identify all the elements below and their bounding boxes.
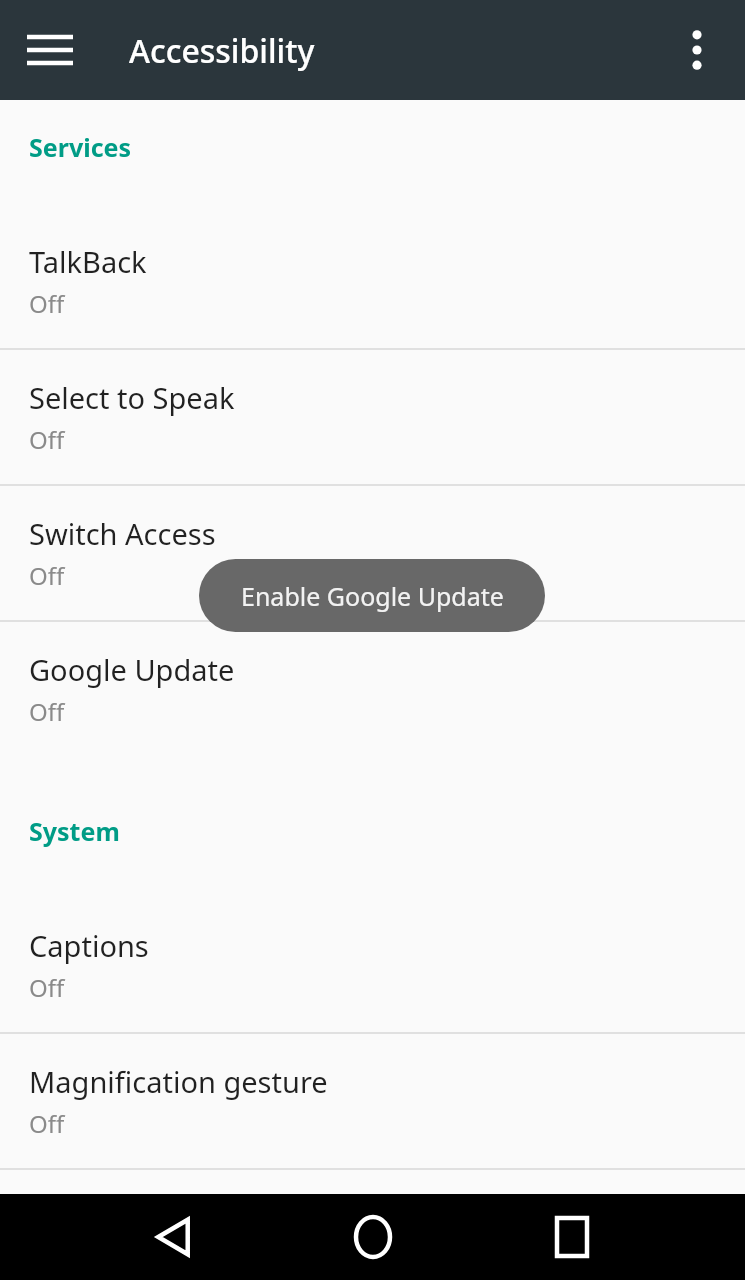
- staticText: Captions: [29, 926, 149, 965]
- staticText: Font size: [29, 1186, 149, 1225]
- button[interactable]: Font size: [0, 1170, 745, 1280]
- staticText: System: [29, 814, 120, 848]
- button[interactable]: Select to Speak: [0, 350, 745, 484]
- button[interactable]: More options: [661, 14, 733, 86]
- staticText: Off: [29, 559, 65, 592]
- button[interactable]: Captions: [0, 898, 745, 1032]
- button[interactable]: Recent apps: [529, 1194, 615, 1280]
- button[interactable]: Google Update: [0, 622, 745, 756]
- staticText: Off: [29, 287, 65, 320]
- staticText: TalkBack: [29, 242, 147, 281]
- staticText: Off: [29, 695, 65, 728]
- staticText: Off: [29, 971, 65, 1004]
- staticText: Off: [29, 423, 65, 456]
- button[interactable]: TalkBack: [0, 214, 745, 348]
- button[interactable]: Back: [130, 1194, 216, 1280]
- staticText: Accessibility: [129, 29, 315, 73]
- staticText: Switch Access: [29, 514, 216, 553]
- staticText: Services: [29, 130, 132, 164]
- button[interactable]: Switch Access: [0, 486, 745, 620]
- staticText: Select to Speak: [29, 378, 235, 417]
- staticText: Off: [29, 1107, 65, 1140]
- staticText: Enable Google Update: [241, 579, 504, 613]
- button[interactable]: Magnification gesture: [0, 1034, 745, 1168]
- staticText: Magnification gesture: [29, 1062, 328, 1101]
- button[interactable]: Open navigation drawer: [14, 14, 86, 86]
- button[interactable]: Home: [330, 1194, 416, 1280]
- staticText: Google Update: [29, 650, 235, 689]
